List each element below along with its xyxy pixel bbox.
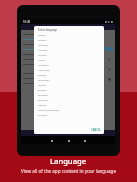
- button[interactable]: Amharic: [34, 53, 104, 58]
- button[interactable]: Armenian: [34, 63, 104, 68]
- staticText: Arabic: [38, 59, 45, 62]
- staticText: View all of the app content in your lang…: [21, 168, 116, 174]
- button[interactable]: Bengali: [34, 83, 104, 88]
- staticText: Burmese: [38, 99, 48, 102]
- staticText: Bulgarian: [38, 94, 49, 97]
- staticText: CANCEL: [91, 128, 101, 132]
- staticText: Bengali: [38, 84, 47, 87]
- button[interactable]: Home: [66, 138, 71, 143]
- staticText: Select language: [38, 28, 57, 31]
- staticText: English: [38, 34, 46, 37]
- staticText: Language: [50, 156, 87, 166]
- button[interactable]: Croatian: [34, 113, 104, 118]
- button[interactable]: Bosnian: [34, 88, 104, 93]
- staticText: Basque: [38, 74, 47, 77]
- staticText: Croatian: [38, 114, 48, 117]
- button[interactable]: Bulgarian: [34, 93, 104, 98]
- button[interactable]: Basque: [34, 73, 104, 78]
- button[interactable]: Azerbaijani: [34, 68, 104, 73]
- button[interactable]: Belarusian: [34, 78, 104, 83]
- button[interactable]: Albanian: [34, 48, 104, 53]
- button[interactable]: Catalan: [34, 103, 104, 108]
- staticText: Bosnian: [38, 89, 47, 92]
- button[interactable]: Back: [49, 138, 54, 143]
- button[interactable]: English: [34, 33, 104, 38]
- staticText: Albanian: [38, 49, 48, 52]
- staticText: Azerbaijani: [38, 69, 50, 72]
- staticText: Spanish: [38, 39, 47, 42]
- button[interactable]: CANCEL: [91, 128, 101, 132]
- staticText: Afrikaans: [38, 44, 49, 47]
- staticText: Chinese (Simplified): [38, 109, 60, 112]
- button[interactable]: Recents: [82, 138, 87, 143]
- button[interactable]: Spanish: [34, 38, 104, 43]
- staticText: Armenian: [38, 64, 49, 67]
- button[interactable]: Arabic: [34, 58, 104, 63]
- button[interactable]: Burmese: [34, 98, 104, 103]
- staticText: Catalan: [38, 104, 47, 107]
- staticText: Amharic: [38, 54, 47, 57]
- staticText: Belarusian: [38, 79, 50, 82]
- button[interactable]: Afrikaans: [34, 43, 104, 48]
- staticText: 10:30: [23, 20, 31, 24]
- button[interactable]: Chinese (Simplified): [34, 108, 104, 113]
